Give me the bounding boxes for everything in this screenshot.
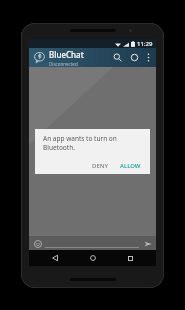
button[interactable] (45, 238, 139, 248)
button[interactable]: Send message (142, 238, 153, 249)
button[interactable]: DENY (88, 158, 112, 174)
button[interactable]: Connect device (126, 48, 143, 67)
button[interactable]: Home (81, 250, 105, 266)
button[interactable]: BlueChat app icon (33, 51, 46, 64)
button[interactable]: More options (143, 48, 154, 67)
staticText: 11:29 (137, 40, 153, 48)
button[interactable]: Insert emoji (32, 238, 43, 249)
button[interactable]: ALLOW (116, 158, 145, 174)
staticText: Disconnected (49, 61, 78, 67)
button[interactable]: Search (109, 48, 126, 67)
button[interactable]: Recent apps (118, 250, 142, 266)
staticText: BlueChat (49, 49, 84, 60)
button[interactable]: Back (43, 250, 67, 266)
staticText: ALLOW (120, 162, 141, 170)
staticText: DENY (92, 162, 108, 170)
staticText: An app wants to turn on Bluetooth. (43, 134, 142, 152)
